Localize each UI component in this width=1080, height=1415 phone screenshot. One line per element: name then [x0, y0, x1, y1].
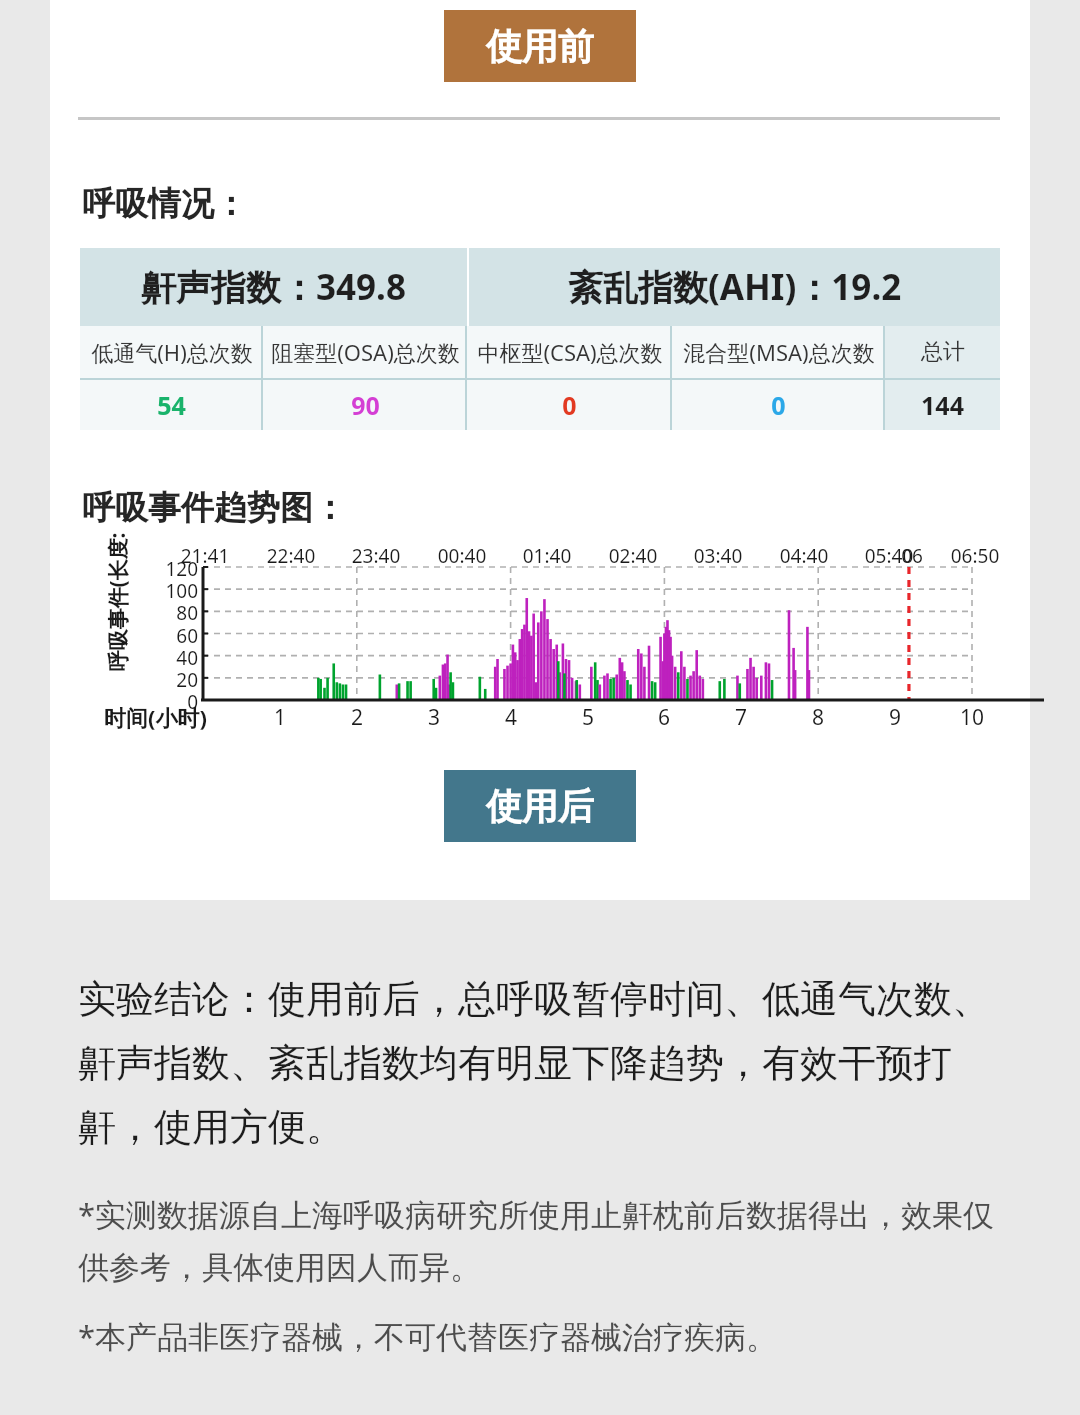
staticText: 22:40 [255, 543, 327, 569]
staticText: 总计 [921, 338, 965, 366]
staticText: 0 [140, 689, 198, 715]
staticText: 01:40 [511, 543, 583, 569]
staticText: 3 [414, 703, 454, 732]
staticText: 04:40 [768, 543, 840, 569]
staticText: 紊乱指数(AHI)：19.2 [568, 263, 902, 311]
staticText: 5 [568, 703, 608, 732]
staticText: *实测数据源自上海呼吸病研究所使用止鼾枕前后数据得出，效果仅供参考，具体使用因人… [78, 1193, 1012, 1287]
staticText: 混合型(MSA)总次数 [683, 337, 875, 367]
staticText: 23:40 [340, 543, 412, 569]
button[interactable]: 使用前 [444, 10, 636, 82]
staticText: 呼吸情况： [82, 183, 247, 225]
staticText: 06:50 [939, 543, 1011, 569]
staticText: 144 [921, 388, 964, 422]
staticText: 中枢型(CSA)总次数 [477, 337, 663, 367]
staticText: 阻塞型(OSA)总次数 [271, 337, 460, 367]
staticText: 呼吸事件趋势图： [82, 487, 346, 529]
staticText: 8 [798, 703, 838, 732]
staticText: 6 [644, 703, 684, 732]
staticText: 90 [351, 388, 380, 422]
staticText: 03:40 [682, 543, 754, 569]
staticText: 呼吸事件(长度:秒) [103, 526, 129, 678]
staticText: 120 [140, 556, 198, 582]
staticText: 80 [140, 600, 198, 626]
staticText: 54 [157, 388, 186, 422]
staticText: 00:40 [426, 543, 498, 569]
staticText: 0 [562, 388, 577, 422]
staticText: 使用前 [486, 24, 594, 69]
staticText: 鼾声指数：349.8 [141, 263, 406, 311]
staticText: 05:40 [853, 543, 925, 569]
staticText: 4 [491, 703, 531, 732]
staticText: 100 [140, 578, 198, 604]
staticText: 06 [892, 543, 932, 569]
staticText: 60 [140, 623, 198, 649]
staticText: 时间(小时) [104, 702, 207, 732]
staticText: 低通气(H)总次数 [91, 337, 253, 367]
staticText: 使用后 [486, 784, 594, 829]
staticText: *本产品非医疗器械，不可代替医疗器械治疗疾病。 [78, 1315, 778, 1357]
staticText: 40 [140, 645, 198, 671]
staticText: 实验结论：使用前后，总呼吸暂停时间、低通气次数、鼾声指数、紊乱指数均有明显下降趋… [78, 975, 1012, 1151]
staticText: 20 [140, 667, 198, 693]
staticText: 10 [952, 703, 992, 732]
staticText: 9 [875, 703, 915, 732]
staticText: 1 [260, 703, 300, 732]
staticText: 02:40 [597, 543, 669, 569]
button[interactable]: 使用后 [444, 770, 636, 842]
staticText: 21:41 [169, 543, 241, 569]
staticText: 2 [337, 703, 377, 732]
staticText: 7 [721, 703, 761, 732]
staticText: 0 [771, 388, 786, 422]
